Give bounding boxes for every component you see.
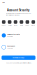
staticText: You can change this at any time in Setti… [5, 62, 31, 64]
button[interactable]: More [30, 20, 36, 26]
button[interactable]: Two-Factor Auth [0, 29, 37, 41]
staticText: Passkeys [7, 45, 15, 47]
button[interactable]: Keys [1, 20, 7, 26]
staticText: Alerts [13, 24, 17, 26]
button[interactable]: Apps [24, 20, 30, 26]
button[interactable]: Passkeys [0, 41, 37, 53]
staticText: Data [20, 24, 23, 26]
staticText: Account Security [7, 8, 30, 12]
staticText: Apps [25, 24, 29, 26]
button[interactable]: Data [18, 20, 24, 26]
button[interactable]: Alerts [13, 20, 18, 26]
staticText: Not set up [7, 47, 13, 49]
staticText: Review settings [12, 57, 24, 59]
staticText: Enabled [7, 36, 13, 37]
staticText: Login [8, 24, 12, 26]
staticText: Review how you sign in and keep your inf… [5, 13, 31, 16]
button[interactable]: Review settings [1, 55, 35, 60]
staticText: More [31, 24, 35, 26]
staticText: Two-Factor Auth [7, 33, 20, 35]
button[interactable]: Login [7, 20, 13, 26]
staticText: Keys [2, 24, 6, 26]
staticText: 9:41 [2, 2, 5, 3]
